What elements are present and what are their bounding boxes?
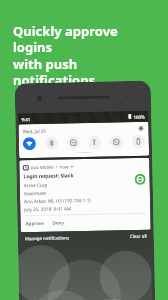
staticText: Manage notifications <box>25 234 70 241</box>
button[interactable]: Duo Mobile • now <box>19 158 151 232</box>
button[interactable]: Auto-rotate <box>110 135 123 148</box>
staticText: Quickly approve logins <box>13 22 158 55</box>
staticText: Ann Arbor, MI, US (192.158.1.1) <box>24 197 91 204</box>
button[interactable]: Manage notifications <box>25 233 70 242</box>
button[interactable]: Clear all <box>130 232 147 240</box>
button[interactable]: Bluetooth <box>45 137 58 150</box>
staticText: Clear all <box>130 233 147 239</box>
staticText: Duo Mobile • now <box>30 163 68 170</box>
button[interactable]: Settings <box>137 125 145 132</box>
staticText: teammate <box>24 190 47 196</box>
staticText: Login request: Slack <box>23 172 74 180</box>
staticText: Deny <box>52 219 65 226</box>
staticText: Acme Corp <box>24 182 48 188</box>
button[interactable]: Approve <box>24 219 46 227</box>
button[interactable]: Flashlight <box>88 136 101 149</box>
staticText: with push notifications <box>13 55 158 88</box>
button[interactable]: Wi-Fi <box>23 137 36 150</box>
staticText: July 25, 2018 9:41 AM <box>24 205 71 212</box>
staticText: Wed, Jul 25 <box>22 128 47 134</box>
staticText: 100% <box>133 114 145 120</box>
staticText: 9:41 <box>21 116 30 122</box>
button[interactable]: Battery saver <box>132 135 145 148</box>
button[interactable]: Do not disturb <box>67 136 80 149</box>
button[interactable]: Deny <box>51 218 66 227</box>
staticText: Approve <box>25 220 45 226</box>
